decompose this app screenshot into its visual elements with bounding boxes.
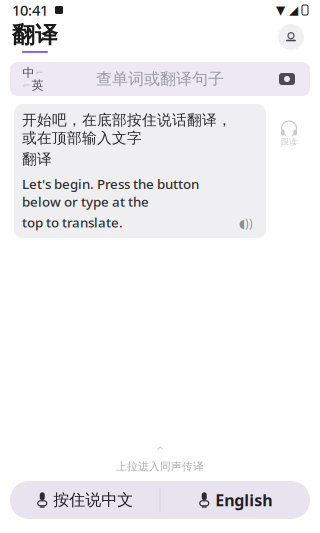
staticText: 10:41 xyxy=(12,0,48,20)
staticText: 查单词或翻译句子 xyxy=(96,69,224,89)
button[interactable]: Listen and repeat xyxy=(272,104,306,147)
staticText: Let's begin. Press the button below or t… xyxy=(22,175,199,210)
staticText: ◖)) xyxy=(239,215,253,231)
staticText: top to translate. xyxy=(22,213,123,231)
button[interactable]: 按住说中文 xyxy=(10,481,159,519)
staticText: ⌐ xyxy=(35,67,43,78)
staticText: ▼ xyxy=(276,3,285,17)
button[interactable]: Account xyxy=(274,20,308,54)
staticText: 跟读 xyxy=(281,137,297,147)
staticText: 按住说中文 xyxy=(53,490,133,510)
staticText: 开始吧，在底部按住说话翻译，或在顶部输入文字 xyxy=(22,111,232,147)
staticText: ⌐ xyxy=(22,80,30,91)
staticText: ⌃ xyxy=(154,444,165,459)
staticText: 翻译 xyxy=(12,21,58,49)
staticText: 翻译 xyxy=(22,150,52,168)
button[interactable]: 中 xyxy=(10,62,310,96)
button[interactable]: Play audio xyxy=(238,215,254,231)
staticText: 中 xyxy=(22,65,34,80)
staticText: ◢ xyxy=(289,3,298,17)
button[interactable]: English xyxy=(160,481,310,519)
staticText: 英 xyxy=(31,78,43,93)
staticText: English xyxy=(215,489,272,511)
staticText: 上拉进入同声传译 xyxy=(116,460,204,473)
